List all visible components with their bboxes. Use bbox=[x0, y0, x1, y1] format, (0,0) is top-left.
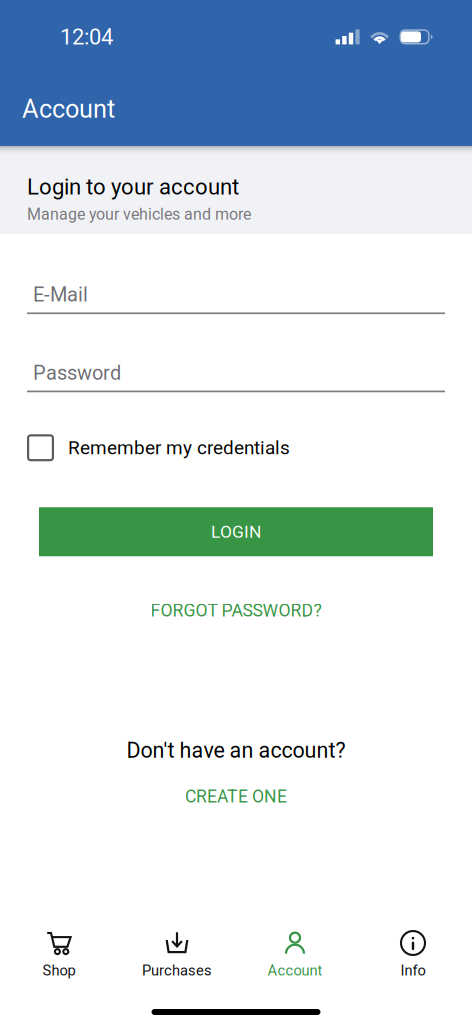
staticText: Shop bbox=[42, 962, 75, 979]
staticText: Manage your vehicles and more bbox=[27, 205, 251, 224]
staticText: CREATE ONE bbox=[185, 786, 287, 807]
staticText: E-Mail bbox=[33, 283, 88, 306]
button[interactable]: Info bbox=[354, 920, 472, 985]
staticText: Password bbox=[33, 361, 121, 384]
button[interactable]: CREATE ONE bbox=[27, 786, 445, 807]
button[interactable]: Remember my credentials bbox=[27, 434, 445, 461]
button[interactable]: FORGOT PASSWORD? bbox=[27, 600, 445, 621]
staticText: Account bbox=[22, 94, 115, 124]
staticText: Login to your account bbox=[27, 174, 239, 200]
button[interactable]: LOGIN bbox=[39, 507, 433, 556]
button[interactable]: Shop bbox=[0, 920, 118, 985]
button[interactable]: Password bbox=[27, 361, 445, 392]
staticText: FORGOT PASSWORD? bbox=[150, 600, 321, 621]
staticText: LOGIN bbox=[211, 522, 261, 542]
staticText: Remember my credentials bbox=[68, 437, 290, 459]
button[interactable]: E-Mail bbox=[27, 283, 445, 314]
staticText: Account bbox=[267, 962, 322, 979]
staticText: Info bbox=[400, 962, 425, 979]
staticText: Don't have an account? bbox=[126, 738, 345, 763]
staticText: 12:04 bbox=[60, 24, 113, 50]
button[interactable]: Account bbox=[236, 920, 354, 985]
button[interactable]: Purchases bbox=[118, 920, 236, 985]
staticText: Purchases bbox=[142, 962, 212, 979]
